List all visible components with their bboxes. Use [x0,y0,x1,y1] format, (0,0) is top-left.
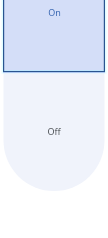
button[interactable]: Off [3,72,105,191]
staticText: On [48,6,61,18]
button[interactable]: On [3,0,105,72]
staticText: Off [47,125,61,137]
